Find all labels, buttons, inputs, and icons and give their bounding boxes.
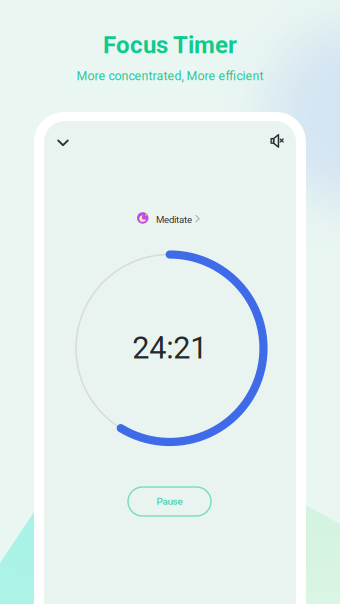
button[interactable]: Mute <box>262 126 292 156</box>
staticText: 24:21 <box>132 330 207 366</box>
button[interactable]: Pause <box>128 487 211 516</box>
staticText: More concentrated, More efficient <box>76 69 263 83</box>
button[interactable]: Collapse <box>48 128 78 158</box>
button[interactable]: Meditate <box>137 210 201 226</box>
staticText: Pause <box>156 496 182 507</box>
staticText: Meditate <box>156 214 192 225</box>
staticText: Focus Timer <box>103 31 237 59</box>
